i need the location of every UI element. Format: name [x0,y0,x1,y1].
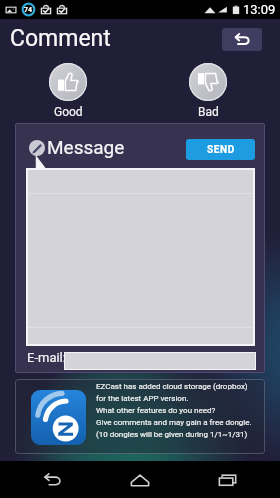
button[interactable]: SEND [186,139,255,160]
staticText: 74 [24,6,33,14]
button[interactable]: Good [49,63,87,119]
staticText: EZCast has added cloud storage (dropbox) [96,382,248,391]
staticText: What other features do you need? [96,406,216,415]
staticText: Comment [10,25,111,52]
staticText: 13:09 [243,2,276,17]
button[interactable]: Bad [189,63,227,119]
button[interactable]: EZCast has added cloud storage (dropbox) [15,379,265,454]
staticText: for the latest APP version. [96,394,189,403]
button[interactable]: Recent apps [193,461,263,498]
staticText: Bad [198,105,219,119]
staticText: Message [47,136,125,158]
button[interactable]: Back [222,28,262,51]
button[interactable]: Back [18,461,88,498]
staticText: E-mail: [27,350,66,365]
staticText: Good [54,105,83,119]
staticText: SEND [207,144,235,156]
staticText: (10 dongles will be given during 1/1~1/3… [96,430,248,439]
staticText: Give comments and may gain a free dongle… [96,418,252,427]
button[interactable]: Home [105,461,175,498]
